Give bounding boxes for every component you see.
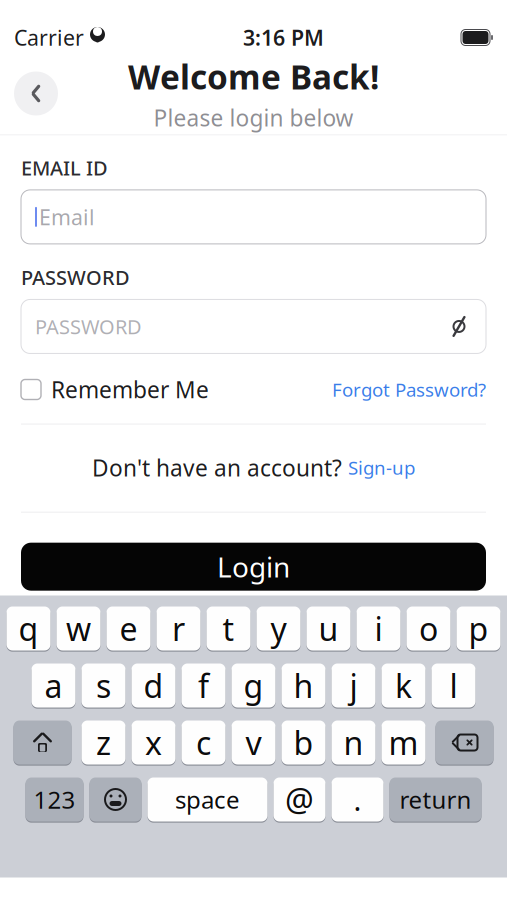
button[interactable]: o (406, 605, 450, 651)
button[interactable]: space (147, 776, 267, 822)
button[interactable]: return (389, 776, 481, 822)
button[interactable]: c (181, 719, 225, 765)
button[interactable]: k (381, 662, 425, 708)
button[interactable]: Show password (446, 313, 472, 339)
staticText: EMAIL ID (21, 154, 108, 181)
staticText: l (449, 664, 457, 707)
button[interactable]: h (281, 662, 325, 708)
staticText: m (388, 721, 418, 764)
staticText: Email (39, 203, 95, 231)
staticText: return (399, 784, 471, 815)
button[interactable]: Login (21, 543, 486, 591)
button[interactable]: v (231, 719, 275, 765)
button[interactable]: Back (14, 71, 58, 115)
staticText: x (145, 721, 162, 764)
staticText: d (143, 664, 163, 707)
button[interactable]: i (356, 605, 400, 651)
staticText: Remember Me (51, 374, 209, 405)
button[interactable]: m (381, 719, 425, 765)
button[interactable]: n (331, 719, 375, 765)
button[interactable]: y (256, 605, 300, 651)
button[interactable]: x (131, 719, 175, 765)
button[interactable]: Forgot Password? (332, 377, 486, 402)
staticText: i (374, 607, 382, 650)
staticText: t (222, 607, 234, 650)
button[interactable]: z (81, 719, 125, 765)
button[interactable]: At sign (273, 776, 325, 822)
staticText: o (419, 607, 438, 650)
staticText: w (66, 607, 91, 650)
button[interactable]: Delete (435, 719, 493, 765)
staticText: Login (217, 548, 290, 585)
staticText: @ (285, 778, 314, 821)
button[interactable]: s (81, 662, 125, 708)
staticText: q (18, 607, 38, 650)
staticText: 123 (33, 784, 75, 815)
staticText: g (243, 664, 263, 707)
staticText: e (119, 607, 137, 650)
staticText: b (293, 721, 313, 764)
staticText: s (96, 664, 111, 707)
button[interactable]: 123 (25, 776, 83, 822)
staticText: PASSWORD (21, 264, 130, 290)
button[interactable]: Remember Me (21, 374, 209, 405)
button[interactable]: f (181, 662, 225, 708)
staticText: space (175, 784, 240, 815)
button[interactable]: r (156, 605, 200, 651)
button[interactable]: . (331, 776, 383, 822)
staticText: u (318, 607, 338, 650)
staticText: h (293, 664, 313, 707)
button[interactable]: w (56, 605, 100, 651)
staticText: Forgot Password? (332, 377, 486, 402)
staticText: v (245, 721, 261, 764)
button[interactable]: g (231, 662, 275, 708)
staticText: Sign-up (348, 455, 415, 480)
staticText: a (44, 664, 62, 707)
button[interactable]: a (31, 662, 75, 708)
staticText: j (349, 664, 357, 707)
staticText: c (196, 721, 211, 764)
button[interactable]: q (6, 605, 50, 651)
staticText: Don't have an account? (92, 453, 342, 483)
button[interactable]: p (456, 605, 500, 651)
staticText: . (353, 780, 361, 819)
button[interactable]: u (306, 605, 350, 651)
staticText: r (172, 607, 185, 650)
button[interactable]: j (331, 662, 375, 708)
button[interactable]: Don't have an account? (0, 453, 507, 483)
staticText: 3:16 PM (243, 23, 324, 52)
button[interactable]: d (131, 662, 175, 708)
staticText: Welcome Back! (128, 54, 379, 99)
staticText: z (96, 721, 111, 764)
button[interactable]: e (106, 605, 150, 651)
staticText: Please login below (153, 103, 353, 133)
button[interactable]: Shift (13, 719, 71, 765)
button[interactable]: t (206, 605, 250, 651)
staticText: f (198, 664, 209, 707)
staticText: PASSWORD (35, 313, 142, 340)
staticText: p (468, 607, 488, 650)
staticText: y (270, 607, 286, 650)
staticText: k (395, 664, 412, 707)
button[interactable]: Emoji (89, 776, 141, 822)
staticText: Carrier (14, 23, 84, 52)
staticText: n (343, 721, 363, 764)
button[interactable]: b (281, 719, 325, 765)
button[interactable]: l (431, 662, 475, 708)
